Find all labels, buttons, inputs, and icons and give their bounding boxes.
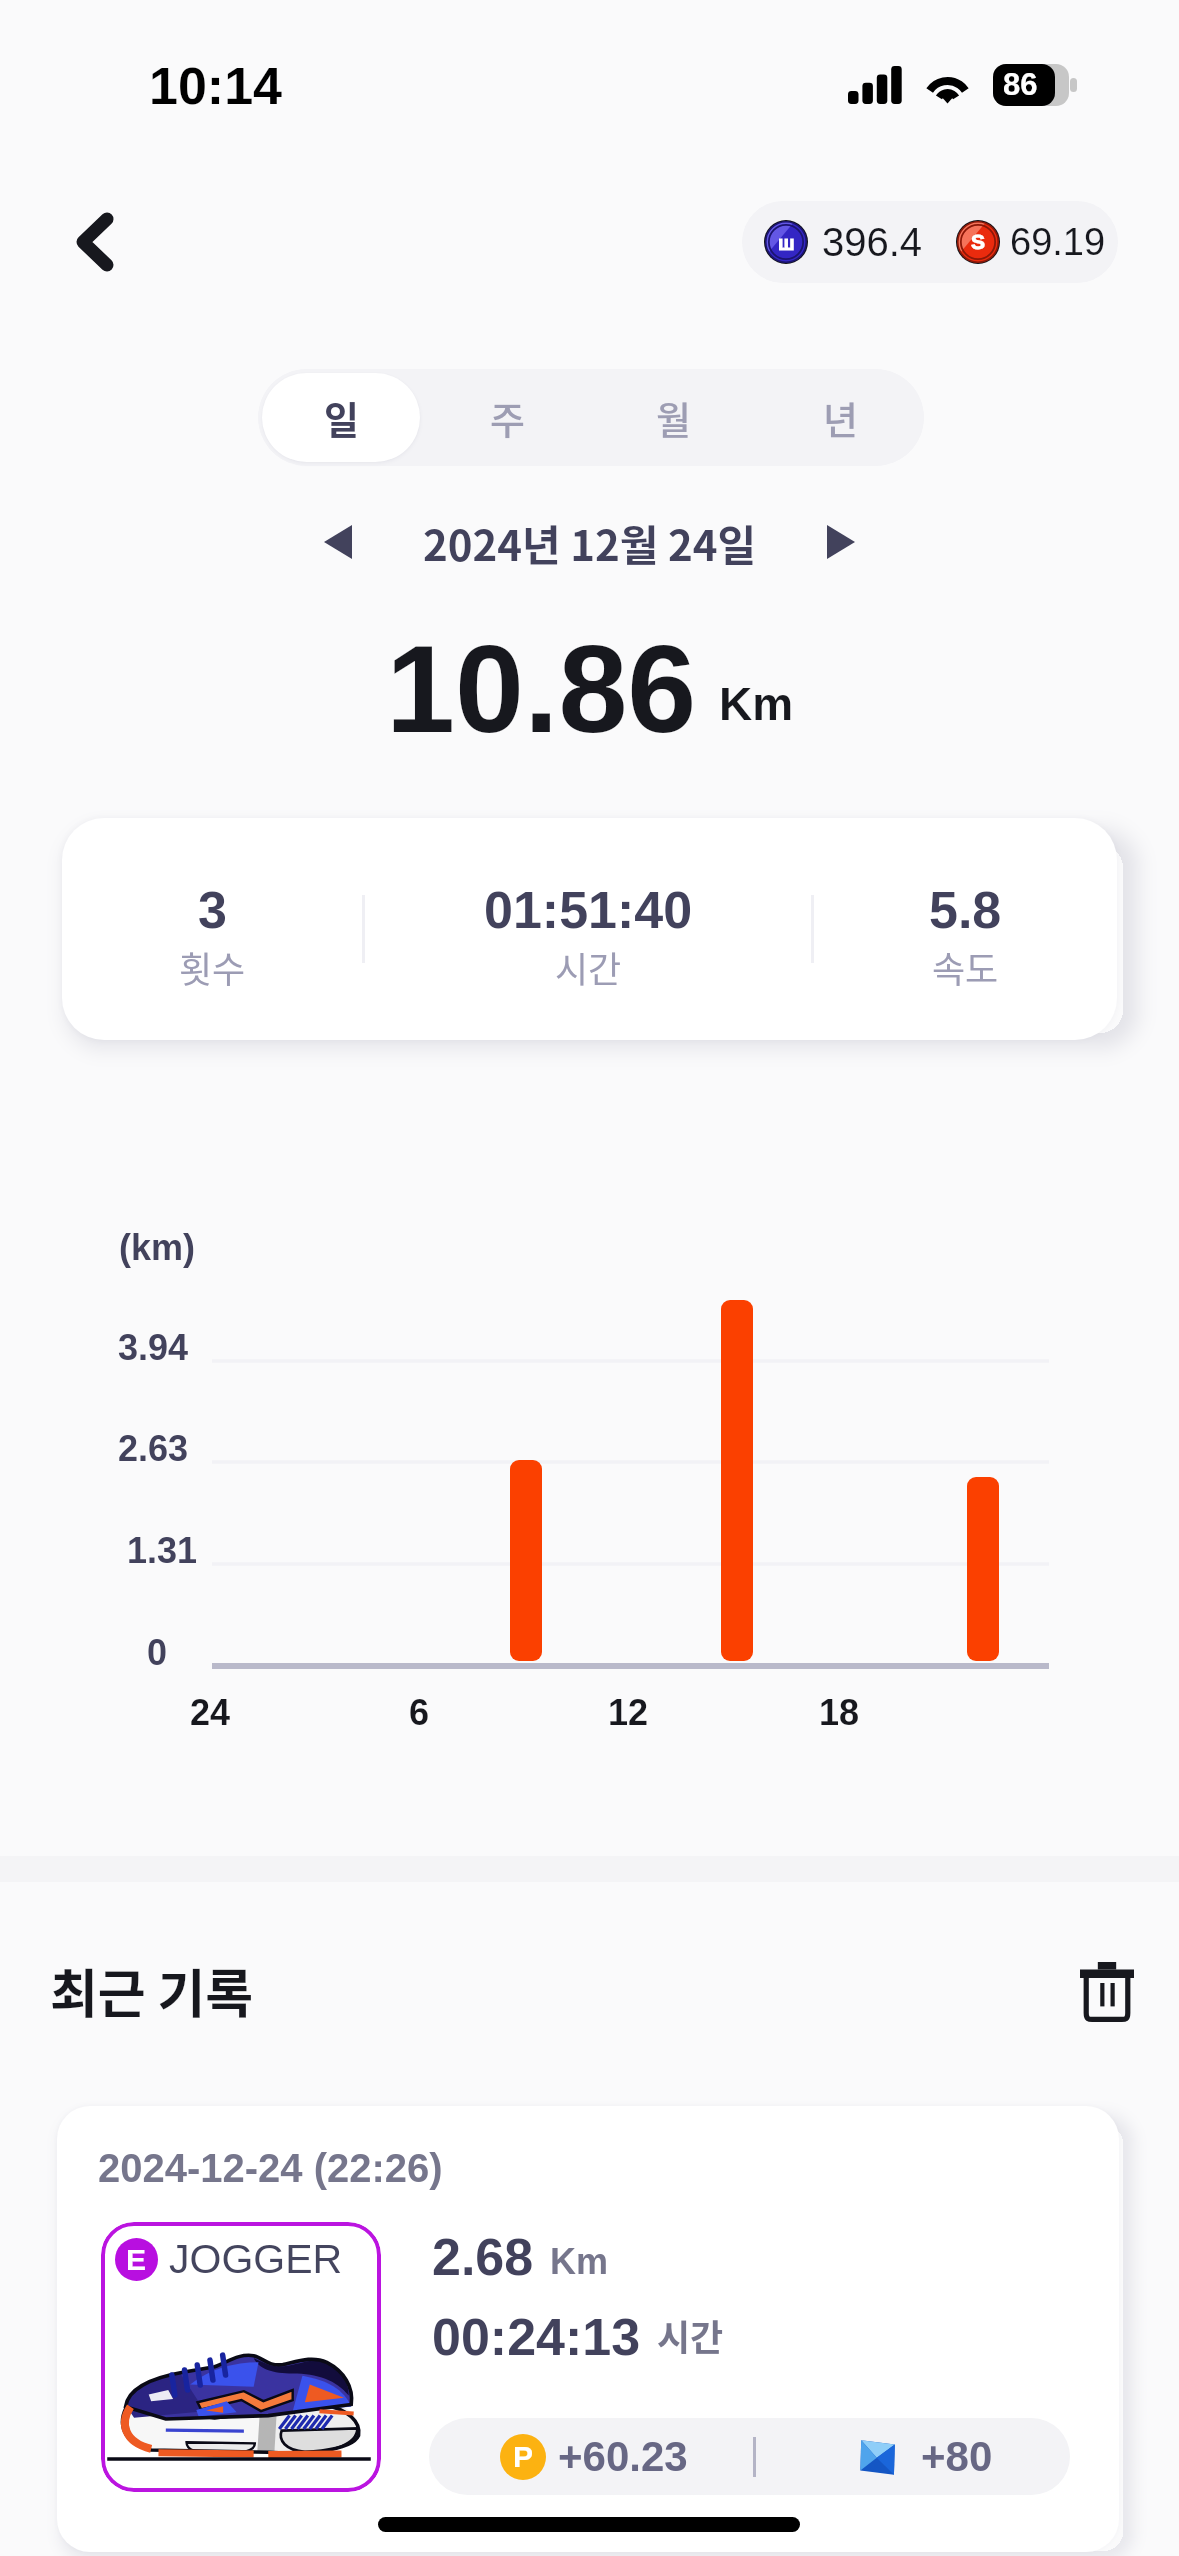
- staticText: 6: [409, 1692, 430, 1732]
- button[interactable]: ш: [742, 201, 1118, 283]
- button[interactable]: 일: [262, 373, 420, 462]
- staticText: 01:51:40: [484, 881, 693, 939]
- staticText: 월: [656, 390, 691, 445]
- staticText: 일: [324, 390, 359, 445]
- staticText: Km: [550, 2241, 609, 2281]
- staticText: 2024년 12월 24일: [423, 512, 757, 573]
- button[interactable]: 주: [428, 373, 586, 462]
- staticText: 3.94: [118, 1327, 189, 1367]
- staticText: 86: [1003, 67, 1038, 102]
- staticText: 00:24:13: [432, 2308, 641, 2366]
- staticText: 10.86: [386, 620, 697, 759]
- staticText: 시간: [657, 2309, 724, 2361]
- staticText: (km): [119, 1227, 196, 1267]
- button[interactable]: P: [429, 2418, 1070, 2495]
- button[interactable]: 2024-12-24 (22:26): [57, 2106, 1119, 2552]
- staticText: 1.31: [127, 1530, 198, 1570]
- button[interactable]: Delete records: [1067, 1952, 1147, 2032]
- staticText: 2.68: [432, 2228, 534, 2286]
- staticText: P: [513, 2440, 534, 2474]
- staticText: 24: [190, 1692, 231, 1732]
- staticText: 0: [147, 1632, 168, 1672]
- staticText: 년: [823, 390, 858, 445]
- button[interactable]: Previous day: [300, 504, 376, 580]
- staticText: 18: [819, 1692, 860, 1732]
- staticText: 2024-12-24 (22:26): [98, 2146, 443, 2191]
- button[interactable]: 년: [761, 373, 920, 462]
- staticText: +80: [921, 2433, 993, 2480]
- staticText: 10:14: [149, 57, 282, 115]
- staticText: 396.4: [822, 220, 923, 265]
- staticText: 시간: [555, 941, 622, 993]
- button[interactable]: Next day: [803, 504, 879, 580]
- staticText: ш: [778, 232, 795, 254]
- staticText: 12: [608, 1692, 649, 1732]
- staticText: 최근 기록: [50, 1953, 254, 2028]
- button[interactable]: 3: [62, 818, 1117, 1040]
- button[interactable]: E: [101, 2222, 381, 2492]
- staticText: +60.23: [558, 2433, 688, 2480]
- staticText: S: [971, 230, 986, 253]
- staticText: 3: [198, 881, 227, 939]
- staticText: 2.63: [118, 1428, 189, 1468]
- staticText: 횟수: [179, 941, 246, 993]
- staticText: 5.8: [929, 881, 1002, 939]
- button[interactable]: 월: [594, 373, 753, 462]
- button[interactable]: Back: [51, 196, 139, 288]
- staticText: 주: [490, 390, 525, 445]
- staticText: Km: [719, 678, 794, 729]
- staticText: JOGGER: [169, 2236, 343, 2282]
- staticText: 속도: [932, 941, 999, 993]
- staticText: 69.19: [1010, 221, 1106, 263]
- staticText: E: [126, 2243, 147, 2277]
